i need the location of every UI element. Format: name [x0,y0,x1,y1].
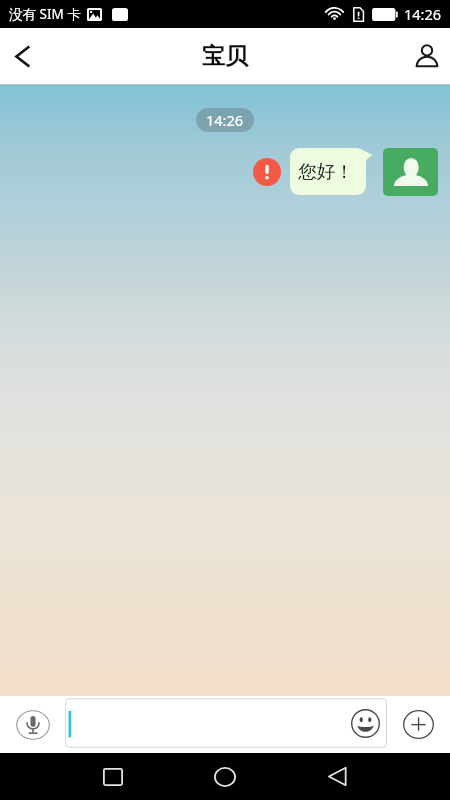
button[interactable]: Resend failed message [253,158,281,186]
staticText: 14:26 [206,110,244,130]
button[interactable]: Emoji [65,698,387,748]
button[interactable]: Back [0,28,46,86]
button[interactable]: Voice input [0,696,65,753]
button[interactable]: Contact profile [402,28,450,86]
staticText: 没有 SIM 卡 [9,5,81,23]
button[interactable]: Emoji [348,706,382,740]
staticText: 您好！ [298,160,354,183]
button[interactable]: Home [169,753,281,800]
staticText: 14:26 [404,4,442,24]
button[interactable]: 您好！ [290,148,373,195]
staticText: 宝贝 [202,42,248,71]
button[interactable]: More options [387,696,450,753]
button[interactable]: Contact avatar [383,148,438,196]
button[interactable]: Recent apps [57,753,169,800]
button[interactable]: Back [281,753,393,800]
